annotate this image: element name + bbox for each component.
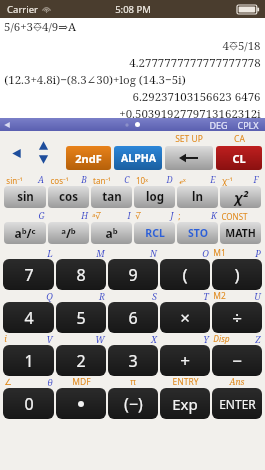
button[interactable]: tan [91, 186, 132, 208]
staticText: V [46, 333, 53, 345]
staticText: S [152, 290, 157, 302]
staticText: aᵇ [105, 225, 118, 241]
staticText: sin [17, 189, 34, 205]
button[interactable]: cos [48, 186, 89, 208]
staticText: Exp [172, 394, 198, 414]
button[interactable]: STO [177, 222, 218, 244]
button[interactable]: ÷ [212, 302, 262, 333]
staticText: 2ndF [75, 151, 102, 166]
button[interactable]: aᵇ [91, 222, 132, 244]
staticText: L [47, 247, 53, 259]
staticText: (12.3+4.8i)−(8.3∠30)+log (14.3−5i) [4, 72, 186, 88]
button[interactable]: Exp [160, 388, 210, 419]
button[interactable]: Up [34, 139, 52, 151]
button[interactable]: ENTER [212, 388, 262, 419]
staticText: 4.2777777777777777778 [129, 55, 261, 71]
staticText: U [254, 290, 261, 302]
staticText: ENTER [219, 396, 256, 412]
button[interactable]: sin [4, 186, 46, 208]
staticText: D [166, 174, 173, 186]
button[interactable]: χ² [220, 186, 261, 208]
staticText: π [130, 376, 136, 388]
staticText: W [95, 333, 105, 345]
staticText: Ans [229, 376, 245, 388]
staticText: + [180, 349, 190, 372]
button[interactable]: 2ndF [66, 146, 111, 170]
staticText: MATH [225, 226, 256, 240]
button[interactable]: Right [60, 143, 80, 163]
button[interactable]: Down [34, 154, 52, 166]
staticText: Disp [213, 333, 230, 345]
staticText: ln [192, 189, 203, 205]
staticText: ∠ [4, 377, 12, 387]
button[interactable]: ( [160, 259, 210, 290]
staticText: 10ˣ [136, 175, 148, 186]
button[interactable]: ) [212, 259, 262, 290]
button[interactable]: (−) [108, 388, 158, 419]
button[interactable]: 0 [3, 388, 54, 419]
staticText: × [180, 306, 190, 329]
staticText: tan [102, 189, 122, 205]
button[interactable]: ᵃ/ᵇ [48, 222, 89, 244]
button[interactable]: × [160, 302, 210, 333]
staticText: 7 [24, 264, 34, 286]
button[interactable]: Previous page [3, 121, 11, 129]
button[interactable]: 2 [56, 345, 106, 376]
staticText: ; [178, 210, 181, 222]
button[interactable]: MATH [220, 222, 261, 244]
staticText: J [170, 210, 174, 222]
staticText: 0 [24, 393, 34, 415]
button[interactable]: log [134, 186, 175, 208]
staticText: O [202, 247, 209, 259]
button[interactable]: Left [6, 143, 26, 163]
staticText: DEG [209, 119, 228, 131]
button[interactable]: 1 [3, 345, 54, 376]
staticText: sin⁻¹ [6, 175, 23, 186]
staticText: M1 [213, 247, 226, 259]
button[interactable]: ALPHA [114, 146, 162, 170]
staticText: (−) [124, 393, 143, 415]
staticText: tan⁻¹ [93, 175, 111, 186]
staticText: MDF [72, 376, 91, 388]
staticText: I [127, 210, 131, 222]
staticText: H [81, 210, 88, 222]
staticText: RCL [145, 226, 165, 240]
button[interactable]: 3 [108, 345, 158, 376]
button[interactable]: Backspace [165, 146, 213, 170]
staticText: CONST [221, 211, 248, 222]
staticText: N [150, 247, 157, 259]
button[interactable]: 6 [108, 302, 158, 333]
button[interactable]: RCL [134, 222, 175, 244]
staticText: CA [234, 133, 245, 145]
button[interactable]: − [212, 345, 262, 376]
staticText: STO [188, 226, 208, 240]
staticText: B [81, 174, 87, 186]
staticText: A [38, 174, 44, 186]
staticText: 8 [76, 264, 86, 286]
staticText: C [124, 174, 130, 186]
button[interactable]: ln [177, 186, 218, 208]
staticText: ᵃ/ᵇ [61, 225, 76, 241]
staticText: Carrier [7, 3, 38, 16]
button[interactable]: 4 [3, 302, 54, 333]
button[interactable]: 5 [56, 302, 106, 333]
staticText: F [253, 174, 259, 186]
staticText: T [203, 290, 209, 302]
button[interactable]: + [160, 345, 210, 376]
staticText: 1 [24, 350, 34, 372]
staticText: 6.29237103156623 6476 [132, 89, 261, 105]
button[interactable]: 8 [56, 259, 106, 290]
staticText: cos⁻¹ [50, 175, 69, 186]
staticText: − [232, 349, 242, 372]
staticText: χ⁻¹ [222, 175, 233, 186]
staticText: +0.5039192779713162312i [119, 106, 261, 118]
button[interactable]: 9 [108, 259, 158, 290]
button[interactable]: 7 [3, 259, 54, 290]
staticText: cos [59, 189, 78, 205]
staticText: 6 [128, 307, 138, 329]
button[interactable] [56, 388, 106, 419]
button[interactable]: aᵇ/ᶜ [4, 222, 46, 244]
staticText: √̅ [135, 211, 141, 221]
button[interactable]: CL [216, 146, 262, 170]
staticText: E [210, 174, 216, 186]
